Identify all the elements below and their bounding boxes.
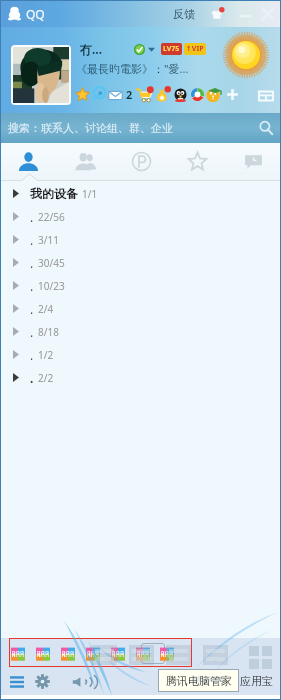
button[interactable]: 我的设备 [0, 182, 281, 205]
button[interactable]: Panel [258, 88, 274, 104]
button[interactable]: . [0, 205, 281, 228]
staticText: . [30, 232, 34, 248]
button[interactable]: . [0, 343, 281, 366]
button[interactable]: Profile avatar [13, 47, 69, 103]
button[interactable]: Star [75, 87, 90, 102]
button[interactable]: LV75 [163, 44, 180, 54]
button[interactable]: 搜索：联系人、讨论组、群、企业 [0, 113, 281, 143]
button[interactable]: Sound [72, 675, 92, 689]
staticText: 2 [126, 87, 133, 102]
button[interactable]: Recent [225, 143, 281, 181]
button[interactable]: Mail [108, 87, 125, 104]
button[interactable]: App 4 [86, 646, 100, 662]
button[interactable]: . [0, 320, 281, 343]
button[interactable]: . [0, 251, 281, 274]
staticText: . [30, 209, 34, 225]
staticText: . [30, 255, 34, 271]
button[interactable]: App 6 [136, 646, 150, 662]
staticText: . [30, 278, 34, 294]
staticText: LV75 [163, 44, 180, 54]
button[interactable]: Contacts [0, 143, 57, 181]
staticText: . [30, 301, 34, 317]
button[interactable]: Pet [173, 87, 188, 102]
button[interactable]: . [0, 297, 281, 320]
staticText: 2/4 [38, 302, 54, 316]
staticText: ↑VIP [186, 44, 204, 54]
button[interactable]: Main menu [10, 676, 24, 688]
button[interactable]: App 3 [61, 646, 75, 662]
button[interactable]: Notifications [207, 4, 227, 24]
button[interactable]: Games [190, 87, 205, 102]
staticText: 22/56 [38, 210, 65, 224]
button[interactable]: Search friends [92, 87, 106, 101]
staticText: 腾讯电脑管家 [166, 674, 232, 688]
button[interactable]: . [0, 274, 281, 297]
staticText: 2/2 [38, 371, 54, 385]
button[interactable]: . [0, 228, 281, 251]
button[interactable]: Wallet [154, 86, 170, 102]
button[interactable]: ↑VIP [186, 44, 204, 54]
staticText: 反馈 [173, 7, 195, 21]
button[interactable]: App 2 [36, 646, 50, 662]
staticText: 我的设备 [30, 186, 78, 201]
staticText: 冇... [80, 41, 103, 57]
button[interactable]: Groups [57, 143, 113, 181]
staticText: 30/45 [38, 256, 65, 270]
button[interactable]: Settings [35, 674, 50, 689]
staticText: QQ [26, 6, 45, 22]
button[interactable]: Shop [136, 86, 153, 103]
staticText: 1/2 [38, 348, 54, 362]
staticText: 应用宝 [240, 674, 273, 688]
staticText: 《最長旳電影》："愛... [76, 61, 189, 76]
button[interactable]: App 7 [160, 646, 174, 662]
staticText: 8/18 [38, 325, 59, 339]
button[interactable]: Add [225, 87, 240, 102]
button[interactable]: Find [113, 143, 169, 181]
staticText: . [30, 347, 34, 363]
staticText: 3/11 [38, 233, 59, 247]
staticText: 1/1 [82, 187, 98, 201]
staticText: 搜索：联系人、讨论组、群、企业 [8, 121, 173, 135]
button[interactable]: 反馈 [171, 7, 197, 21]
staticText: . [30, 324, 34, 340]
button[interactable]: Study [206, 86, 222, 102]
button[interactable]: App 1 [11, 646, 25, 662]
button[interactable]: Favourites [169, 143, 225, 181]
button[interactable]: App 5 [111, 646, 125, 662]
button[interactable]: Search [257, 119, 275, 137]
staticText: 10/23 [38, 279, 65, 293]
button[interactable]: Minimize [235, 4, 255, 24]
staticText: . [30, 370, 34, 386]
button[interactable]: . [0, 366, 281, 389]
